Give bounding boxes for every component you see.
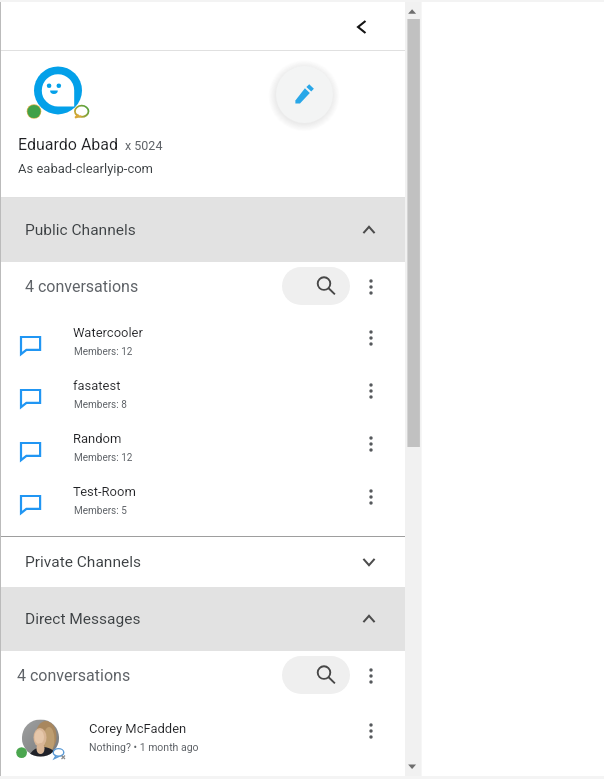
staticText: fasatest xyxy=(73,378,121,393)
staticText: 4 conversations xyxy=(17,666,131,685)
button[interactable]: Compose new message xyxy=(276,66,333,123)
staticText: Nothing? • 1 month ago xyxy=(89,741,199,753)
button[interactable]: Corey McFadden xyxy=(0,700,405,762)
button[interactable]: Test-Room xyxy=(0,470,405,523)
staticText: Members: 12 xyxy=(74,452,133,464)
staticText: Eduardo Abad xyxy=(18,135,119,154)
button[interactable]: Back xyxy=(345,10,379,44)
button[interactable]: Public Channels xyxy=(0,198,405,262)
button[interactable]: Direct Messages xyxy=(0,587,405,651)
staticText: Members: 5 xyxy=(74,505,127,517)
staticText: Members: 8 xyxy=(74,399,127,411)
button[interactable]: More options xyxy=(357,662,385,690)
button[interactable]: Random xyxy=(0,417,405,470)
staticText: Members: 12 xyxy=(74,346,133,358)
button[interactable]: More options xyxy=(357,377,385,405)
button[interactable]: Search xyxy=(282,656,350,694)
button[interactable]: More options xyxy=(357,483,385,511)
button[interactable]: More options xyxy=(357,273,385,301)
button[interactable]: Watercooler xyxy=(0,311,405,364)
button[interactable]: fasatest xyxy=(0,364,405,417)
button[interactable]: More options xyxy=(357,324,385,352)
button[interactable]: More options xyxy=(357,430,385,458)
button[interactable]: Search xyxy=(282,267,350,305)
staticText: Watercooler xyxy=(73,325,143,340)
button[interactable]: Private Channels xyxy=(0,537,405,587)
staticText: 4 conversations xyxy=(25,277,139,296)
staticText: Corey McFadden xyxy=(89,721,187,736)
staticText: As eabad-clearlyip-com xyxy=(18,161,153,176)
staticText: Test-Room xyxy=(73,484,136,499)
staticText: Private Channels xyxy=(25,553,141,571)
staticText: x 5024 xyxy=(125,138,163,153)
staticText: Random xyxy=(73,431,122,446)
staticText: Public Channels xyxy=(25,221,136,239)
button[interactable]: More options xyxy=(357,717,385,745)
staticText: Direct Messages xyxy=(25,610,141,628)
